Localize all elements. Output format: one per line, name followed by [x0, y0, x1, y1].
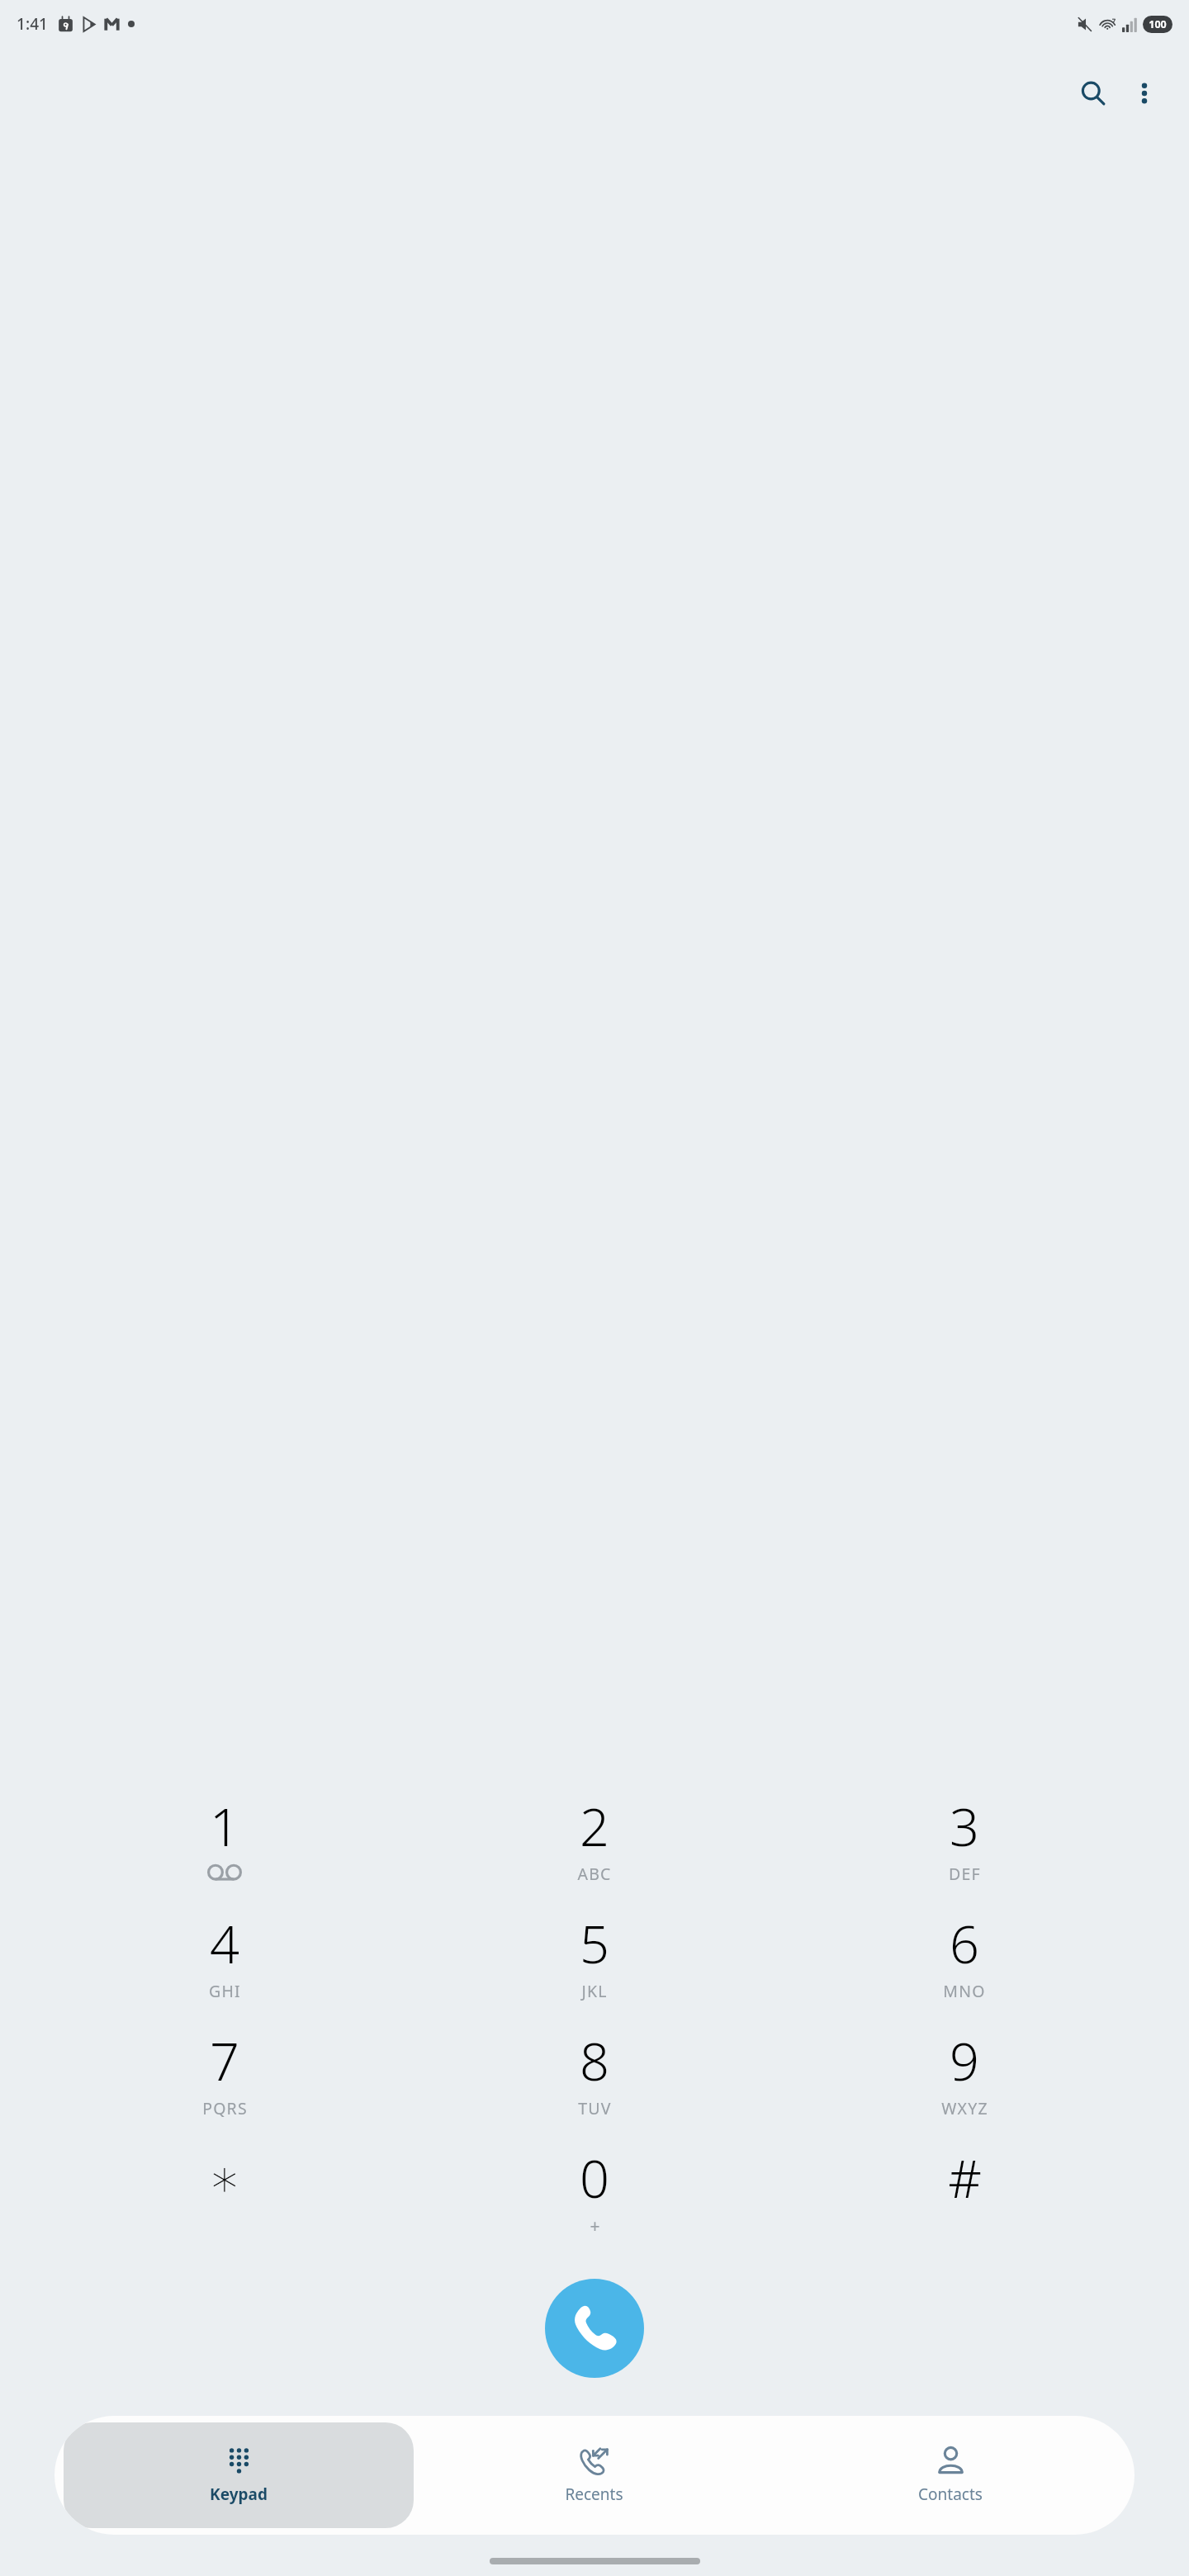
button[interactable]: Call [545, 2279, 644, 2378]
button[interactable]: 6 [779, 1907, 1149, 2024]
staticText: ∗ [208, 2148, 241, 2209]
staticText: PQRS [202, 2097, 248, 2119]
button[interactable]: 2 [410, 1790, 779, 1907]
button[interactable]: 1 [40, 1790, 410, 1907]
staticText: GHI [209, 1980, 241, 2002]
staticText: Contacts [918, 2484, 983, 2505]
staticText: 3 [950, 1791, 979, 1862]
staticText: DEF [949, 1863, 981, 1885]
staticText: 2 [580, 1791, 609, 1862]
staticText: ABC [577, 1863, 612, 1885]
staticText: 8 [580, 2025, 609, 2096]
staticText: 4 [210, 1908, 239, 1979]
staticText: + [590, 2214, 600, 2238]
staticText: WXYZ [941, 2097, 988, 2119]
button[interactable]: 8 [410, 2024, 779, 2142]
staticText: 5 [580, 1908, 609, 1979]
staticText: Keypad [210, 2484, 268, 2505]
staticText: 100 [1149, 17, 1167, 31]
staticText: 1:41 [17, 13, 48, 35]
button[interactable]: 0 [410, 2142, 779, 2259]
staticText: 6 [950, 1908, 979, 1979]
button[interactable]: 9 [779, 2024, 1149, 2142]
button[interactable]: More options [1121, 70, 1168, 116]
staticText: 7 [210, 2025, 239, 2096]
button[interactable]: 3 [779, 1790, 1149, 1907]
staticText: TUV [578, 2097, 612, 2119]
button[interactable]: Recents [416, 2422, 772, 2528]
button[interactable]: Search [1070, 70, 1116, 116]
button[interactable]: 7 [40, 2024, 410, 2142]
button[interactable]: Contacts [772, 2422, 1128, 2528]
button[interactable]: 4 [40, 1907, 410, 2024]
button[interactable]: Keypad [64, 2422, 414, 2528]
button[interactable]: # [779, 2142, 1149, 2259]
button[interactable]: ∗ [40, 2142, 410, 2259]
staticText: MNO [943, 1980, 986, 2002]
staticText: Recents [565, 2484, 623, 2505]
button[interactable]: 5 [410, 1907, 779, 2024]
staticText: 0 [580, 2143, 609, 2214]
staticText: JKL [581, 1980, 608, 2002]
staticText: 1 [210, 1791, 239, 1862]
staticText: # [948, 2143, 982, 2214]
staticText: 9 [950, 2025, 979, 2096]
